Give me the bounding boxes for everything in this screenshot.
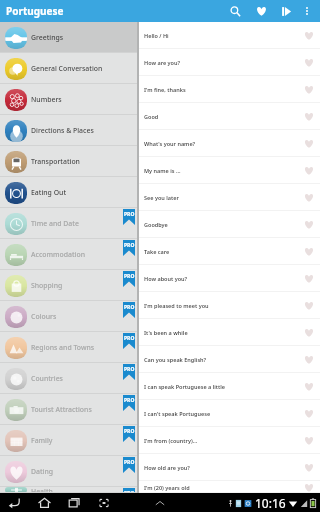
button[interactable]: I'm fine, thanks <box>139 76 320 103</box>
staticText: PRO <box>124 304 135 311</box>
staticText: Shopping <box>31 281 63 290</box>
staticText: I can speak Portuguese a little <box>144 383 226 390</box>
staticText: Transportation <box>31 157 80 166</box>
staticText: Regions and Towns <box>31 343 95 352</box>
button[interactable]: My name is ... <box>139 157 320 184</box>
button[interactable]: I'm from (country)... <box>139 427 320 454</box>
staticText: I can't speak Portuguese <box>144 410 211 417</box>
staticText: It's been a while <box>144 329 188 336</box>
button[interactable]: Directions & Places <box>0 115 137 146</box>
button[interactable]: Good <box>139 103 320 130</box>
staticText: Numbers <box>31 95 62 104</box>
button[interactable]: Countries <box>0 363 137 394</box>
button[interactable]: Expand <box>150 493 170 512</box>
staticText: Good <box>144 113 159 120</box>
button[interactable]: Shopping <box>0 270 137 301</box>
staticText: Portuguese <box>6 4 64 18</box>
staticText: How old are you? <box>144 464 190 471</box>
button[interactable]: Home <box>29 493 59 512</box>
staticText: PRO <box>124 273 135 280</box>
button[interactable]: Colours <box>0 301 137 332</box>
button[interactable]: Recent apps <box>59 493 89 512</box>
button[interactable]: Greetings <box>0 22 137 53</box>
staticText: Greetings <box>31 33 64 42</box>
staticText: PRO <box>124 211 135 218</box>
button[interactable]: Dating <box>0 456 137 487</box>
staticText: I'm fine, thanks <box>144 86 186 93</box>
button[interactable]: Health <box>0 487 137 493</box>
button[interactable]: Time and Date <box>0 208 137 239</box>
button[interactable]: How are you? <box>139 49 320 76</box>
button[interactable]: Hello / Hi <box>139 22 320 49</box>
staticText: 10:16 <box>255 495 286 511</box>
staticText: General Conversation <box>31 64 103 73</box>
button[interactable]: See you later <box>139 184 320 211</box>
staticText: Countries <box>31 374 63 383</box>
button[interactable]: What's your name? <box>139 130 320 157</box>
staticText: Family <box>31 436 53 445</box>
staticText: Dating <box>31 467 54 476</box>
button[interactable]: Eating Out <box>0 177 137 208</box>
staticText: Goodbye <box>144 221 168 228</box>
button[interactable]: I can speak Portuguese a little <box>139 373 320 400</box>
button[interactable]: Take care <box>139 238 320 265</box>
staticText: PRO <box>124 459 135 466</box>
staticText: Tourist Attractions <box>31 405 92 414</box>
staticText: See you later <box>144 194 179 201</box>
staticText: PRO <box>124 490 135 493</box>
staticText: Accommodation <box>31 250 85 259</box>
button[interactable]: Can you speak English? <box>139 346 320 373</box>
staticText: PRO <box>124 428 135 435</box>
staticText: Colours <box>31 312 57 321</box>
button[interactable]: I'm (20) years old <box>139 481 320 493</box>
button[interactable]: I can't speak Portuguese <box>139 400 320 427</box>
button[interactable]: Tourist Attractions <box>0 394 137 425</box>
button[interactable]: Goodbye <box>139 211 320 238</box>
staticText: Eating Out <box>31 188 67 197</box>
button[interactable]: General Conversation <box>0 53 137 84</box>
staticText: Directions & Places <box>31 126 94 135</box>
button[interactable]: Screenshot <box>89 493 119 512</box>
button[interactable]: Regions and Towns <box>0 332 137 363</box>
button[interactable]: Search <box>223 0 248 22</box>
staticText: Hello / Hi <box>144 32 169 39</box>
button[interactable]: Back <box>0 493 29 512</box>
staticText: I'm from (country)... <box>144 437 198 444</box>
staticText: PRO <box>124 335 135 342</box>
staticText: Take care <box>144 248 170 255</box>
button[interactable]: Numbers <box>0 84 137 115</box>
button[interactable]: Accommodation <box>0 239 137 270</box>
staticText: How are you? <box>144 59 181 66</box>
staticText: How about you? <box>144 275 188 282</box>
staticText: Time and Date <box>31 219 79 228</box>
staticText: PRO <box>124 397 135 404</box>
staticText: I'm pleased to meet you <box>144 302 209 309</box>
button[interactable]: It's been a while <box>139 319 320 346</box>
staticText: Health <box>31 487 53 493</box>
staticText: PRO <box>124 366 135 373</box>
staticText: I'm (20) years old <box>144 484 190 491</box>
staticText: PRO <box>124 242 135 249</box>
button[interactable]: How about you? <box>139 265 320 292</box>
button[interactable]: More options <box>298 0 316 22</box>
staticText: My name is ... <box>144 167 181 174</box>
button[interactable]: Play all <box>274 0 298 22</box>
button[interactable]: How old are you? <box>139 454 320 481</box>
staticText: Can you speak English? <box>144 356 207 363</box>
button[interactable]: Favourites <box>248 0 274 22</box>
staticText: What's your name? <box>144 140 196 147</box>
button[interactable]: I'm pleased to meet you <box>139 292 320 319</box>
button[interactable]: Family <box>0 425 137 456</box>
button[interactable]: Transportation <box>0 146 137 177</box>
